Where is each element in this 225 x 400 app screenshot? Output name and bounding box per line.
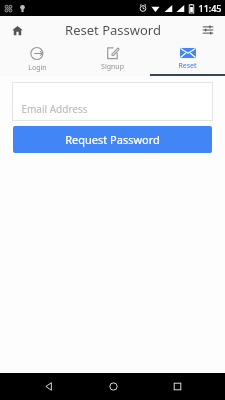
button[interactable]: Signup <box>75 44 150 76</box>
button[interactable]: Recent apps <box>160 373 194 400</box>
button[interactable]: Home <box>96 373 130 400</box>
button[interactable]: Home <box>6 19 28 41</box>
button[interactable]: Email Address <box>12 82 213 121</box>
button[interactable]: Menu <box>197 19 219 41</box>
staticText: Signup <box>101 62 124 72</box>
button[interactable]: Login <box>0 44 75 76</box>
staticText: Login <box>28 63 47 73</box>
button[interactable]: Request Password <box>13 126 212 153</box>
staticText: Reset Password <box>65 21 161 39</box>
staticText: Email Address <box>21 102 88 116</box>
staticText: Request Password <box>65 132 160 147</box>
staticText: Reset <box>178 61 197 71</box>
button[interactable]: Reset <box>150 44 225 76</box>
button[interactable]: Back <box>31 373 65 400</box>
staticText: 11:45 <box>198 2 222 14</box>
